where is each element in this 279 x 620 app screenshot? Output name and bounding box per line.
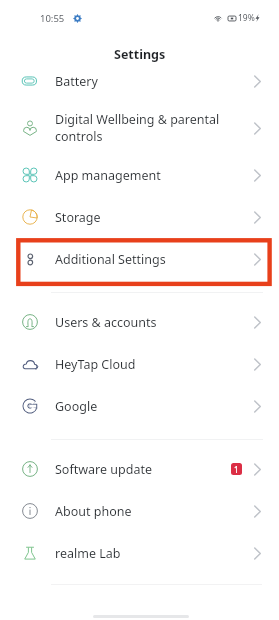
button[interactable]: App management <box>0 154 279 196</box>
staticText: Users & accounts <box>55 314 254 331</box>
staticText: About phone <box>55 503 254 520</box>
button[interactable]: Users & accounts <box>0 301 279 343</box>
staticText: 19% <box>238 12 255 24</box>
button[interactable]: Google <box>0 385 279 427</box>
button[interactable]: Storage <box>0 196 279 238</box>
staticText: Storage <box>55 209 254 226</box>
button[interactable]: HeyTap Cloud <box>0 343 279 385</box>
staticText: Software update <box>55 461 231 478</box>
staticText: Digital Wellbeing & parental controls <box>55 111 254 145</box>
button[interactable]: Additional Settings <box>0 238 279 280</box>
button[interactable]: realme Lab <box>0 532 279 574</box>
button[interactable]: About phone <box>0 490 279 532</box>
staticText: realme Lab <box>55 545 254 562</box>
staticText: 10:55 <box>40 12 65 25</box>
button[interactable]: Software update <box>0 448 279 490</box>
staticText: Battery <box>55 73 254 90</box>
staticText: Additional Settings <box>55 251 254 268</box>
staticText: HeyTap Cloud <box>55 356 254 373</box>
staticText: Settings <box>114 46 166 63</box>
staticText: Google <box>55 398 254 415</box>
staticText: App management <box>55 167 254 184</box>
button[interactable]: Digital Wellbeing & parental controls <box>0 102 279 154</box>
staticText: 1 <box>234 464 239 475</box>
button[interactable]: Battery <box>0 60 279 102</box>
